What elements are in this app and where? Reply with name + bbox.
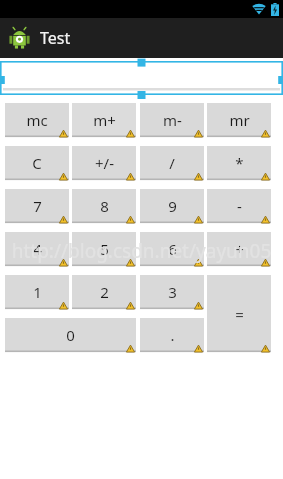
button[interactable]: mr [207,103,271,139]
staticText: m+ [93,110,116,130]
button[interactable]: 4 [5,232,69,268]
button[interactable]: / [140,146,204,182]
staticText: Test [40,27,71,49]
staticText: + [235,239,244,259]
button[interactable]: mc [5,103,69,139]
button[interactable]: 6 [140,232,204,268]
staticText: 7 [33,196,42,216]
button[interactable]: 8 [72,189,136,225]
button[interactable]: 9 [140,189,204,225]
staticText: 1 [33,282,42,302]
button[interactable]: 3 [140,275,204,311]
button[interactable]: 5 [72,232,136,268]
button[interactable]: C [5,146,69,182]
staticText: 4 [33,239,42,259]
button[interactable] [3,64,280,96]
staticText: mr [229,110,250,130]
button[interactable]: m+ [72,103,136,139]
staticText: * [235,153,244,173]
staticText: 9 [168,196,177,216]
button[interactable]: 0 [5,318,136,354]
button[interactable]: m- [140,103,204,139]
button[interactable]: 2 [72,275,136,311]
staticText: m- [163,110,182,130]
button[interactable]: = [207,275,271,354]
staticText: mc [26,110,48,130]
staticText: 3 [168,282,177,302]
staticText: - [237,196,242,216]
staticText: 5 [100,239,109,259]
staticText: / [169,153,175,173]
staticText: 0 [66,325,75,345]
button[interactable]: +/- [72,146,136,182]
staticText: . [170,325,175,345]
staticText: +/- [95,153,114,173]
button[interactable]: - [207,189,271,225]
staticText: http://blog.csdn.net/yayun05 [0,238,283,264]
staticText: = [235,304,244,324]
staticText: 8 [100,196,109,216]
staticText: C [32,153,42,173]
staticText: 2 [100,282,109,302]
button[interactable]: . [140,318,204,354]
button[interactable]: 7 [5,189,69,225]
button[interactable]: + [207,232,271,268]
button[interactable]: 1 [5,275,69,311]
button[interactable]: * [207,146,271,182]
staticText: 6 [168,239,177,259]
